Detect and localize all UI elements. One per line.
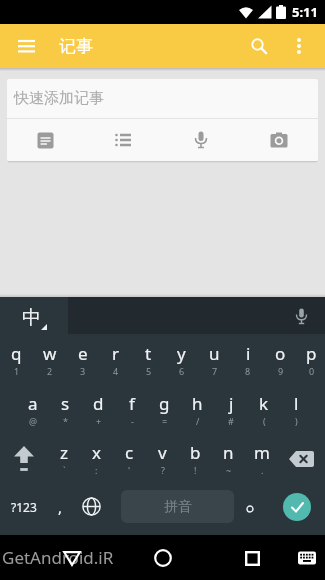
button[interactable]: b xyxy=(179,434,212,483)
button[interactable]: m xyxy=(245,434,278,483)
staticText: + xyxy=(96,415,102,427)
staticText: / xyxy=(196,415,200,427)
staticText: 5 xyxy=(146,365,152,377)
staticText: 7 xyxy=(212,365,218,377)
button[interactable]: q xyxy=(0,334,33,384)
staticText: # xyxy=(228,415,234,427)
staticText: = xyxy=(162,415,168,427)
staticText: h xyxy=(192,392,203,415)
button[interactable]: ?123 xyxy=(0,483,48,530)
button[interactable] xyxy=(237,26,281,66)
button[interactable]: r xyxy=(99,334,132,384)
button[interactable]: o xyxy=(264,334,297,384)
staticText: : xyxy=(95,464,98,476)
staticText: t xyxy=(145,342,152,365)
staticText: j xyxy=(229,392,234,415)
button[interactable]: l xyxy=(280,384,313,434)
button[interactable] xyxy=(235,541,269,575)
staticText: 4 xyxy=(113,365,119,377)
staticText: a xyxy=(28,392,38,415)
button[interactable]: w xyxy=(33,334,66,384)
staticText: 快速添加记事 xyxy=(14,89,104,108)
button[interactable] xyxy=(10,30,43,63)
staticText: r xyxy=(112,342,120,365)
button[interactable]: v xyxy=(146,434,179,483)
button[interactable]: 中 xyxy=(0,297,68,334)
button[interactable]: g xyxy=(148,384,181,434)
staticText: o xyxy=(275,342,286,365)
staticText: 5:11 xyxy=(292,3,318,21)
staticText: ~ xyxy=(226,464,232,476)
staticText: , xyxy=(58,497,63,517)
staticText: ( xyxy=(263,415,266,427)
button[interactable] xyxy=(72,483,110,530)
button[interactable]: d xyxy=(82,384,115,434)
staticText: 9 xyxy=(278,365,284,377)
staticText: ? xyxy=(161,464,165,476)
staticText: * xyxy=(63,415,68,427)
staticText: ?123 xyxy=(11,499,37,515)
staticText: ` xyxy=(63,464,66,476)
button[interactable]: 快速添加记事 xyxy=(7,79,318,118)
staticText: w xyxy=(43,342,57,365)
button[interactable]: y xyxy=(165,334,198,384)
button[interactable] xyxy=(236,483,260,530)
staticText: d xyxy=(93,392,104,415)
staticText: 1 xyxy=(14,365,20,377)
staticText: ' xyxy=(128,464,131,476)
button[interactable]: 拼音 xyxy=(121,490,234,523)
button[interactable]: i xyxy=(231,334,264,384)
button[interactable] xyxy=(146,541,180,575)
staticText: y xyxy=(177,342,186,365)
staticText: c xyxy=(125,441,134,464)
button[interactable] xyxy=(84,119,162,161)
button[interactable] xyxy=(55,541,89,575)
staticText: n xyxy=(223,441,234,464)
button[interactable]: , xyxy=(48,483,72,530)
button[interactable] xyxy=(7,119,84,161)
staticText: q xyxy=(11,342,22,365)
button[interactable]: k xyxy=(247,384,280,434)
staticText: s xyxy=(61,392,70,415)
button[interactable]: a xyxy=(16,384,49,434)
staticText: i xyxy=(246,342,251,365)
staticText: u xyxy=(209,342,220,365)
staticText: p xyxy=(306,342,317,365)
button[interactable] xyxy=(162,119,240,161)
staticText: @ xyxy=(29,415,38,427)
button[interactable]: j xyxy=(214,384,247,434)
staticText: g xyxy=(159,392,170,415)
button[interactable]: h xyxy=(181,384,214,434)
staticText: 记事 xyxy=(59,36,93,57)
staticText: l xyxy=(294,392,299,415)
staticText: b xyxy=(190,441,201,464)
button[interactable]: u xyxy=(198,334,231,384)
button[interactable] xyxy=(281,26,317,66)
button[interactable] xyxy=(294,545,320,571)
button[interactable] xyxy=(240,119,318,161)
button[interactable]: f xyxy=(115,384,148,434)
staticText: z xyxy=(60,441,68,464)
staticText: ! xyxy=(194,464,197,476)
button[interactable]: t xyxy=(132,334,165,384)
button[interactable]: n xyxy=(212,434,245,483)
button[interactable]: p xyxy=(297,334,325,384)
button[interactable] xyxy=(278,434,325,483)
button[interactable]: x xyxy=(80,434,113,483)
button[interactable] xyxy=(286,301,316,331)
staticText: f xyxy=(129,392,135,415)
button[interactable]: c xyxy=(113,434,146,483)
staticText: GetAndroid.iR xyxy=(2,546,114,569)
button[interactable]: e xyxy=(66,334,99,384)
button[interactable]: z xyxy=(47,434,80,483)
staticText: - xyxy=(131,415,134,427)
staticText: . xyxy=(261,464,264,476)
staticText: 8 xyxy=(245,365,251,377)
button[interactable]: s xyxy=(49,384,82,434)
button[interactable] xyxy=(260,483,325,530)
staticText: 中 xyxy=(22,306,41,330)
button[interactable] xyxy=(0,434,47,483)
staticText: x xyxy=(92,441,101,464)
staticText: 拼音 xyxy=(164,498,192,516)
staticText: 0 xyxy=(309,365,315,377)
